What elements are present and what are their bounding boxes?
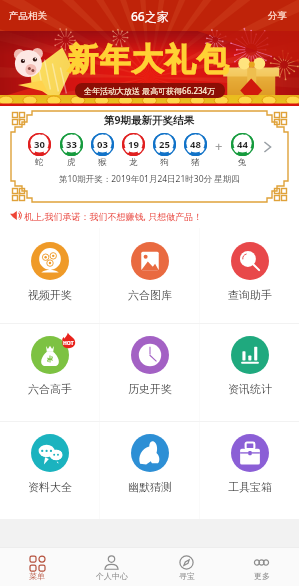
staticText: 蛇	[35, 157, 44, 168]
button[interactable]: 查询助手	[200, 228, 299, 323]
button[interactable]: 机上,我们承诺：我们不想赚钱, 只想做产品！	[0, 203, 299, 228]
button[interactable]: 产品相关	[0, 0, 56, 31]
staticText: 全年活动大放送 最高可获得66.234万	[84, 85, 216, 96]
button[interactable]: 分享	[256, 0, 299, 31]
staticText: 分享	[268, 10, 287, 22]
staticText: +	[215, 137, 223, 155]
staticText: 历史开奖	[128, 382, 172, 396]
staticText: 新年大礼包	[67, 40, 230, 79]
staticText: 产品相关	[9, 10, 47, 22]
staticText: 25	[159, 138, 170, 151]
staticText: 第10期开奖：2019年01月24日21时30分 星期四	[59, 173, 240, 185]
staticText: 幽默猜测	[128, 480, 172, 494]
button[interactable]: 寻宝	[149, 547, 224, 586]
button[interactable]: 新年大礼包	[0, 31, 299, 106]
button[interactable]: 资料大全	[0, 422, 99, 519]
button[interactable]: HOT	[0, 324, 99, 421]
staticText: 48	[190, 138, 201, 151]
staticText: 猪	[191, 157, 200, 168]
staticText: 兔	[238, 157, 247, 168]
staticText: 猴	[98, 157, 107, 168]
staticText: 资料大全	[28, 480, 72, 494]
staticText: 更多	[254, 571, 270, 581]
button[interactable]: 六合图库	[100, 228, 199, 323]
staticText: 第9期最新开奖结果	[104, 113, 195, 127]
button[interactable]: 视频开奖	[0, 228, 99, 323]
button[interactable]: 个人中心	[74, 547, 149, 586]
staticText: 03	[97, 138, 108, 151]
staticText: 机上,我们承诺：我们不想赚钱, 只想做产品！	[24, 210, 203, 222]
staticText: 工具宝箱	[228, 480, 272, 494]
staticText: 66之家	[131, 8, 169, 24]
button[interactable]: 幽默猜测	[100, 422, 199, 519]
staticText: 查询助手	[228, 288, 272, 302]
staticText: 资讯统计	[228, 382, 272, 396]
button[interactable]: 更多	[224, 547, 299, 586]
staticText: 六合高手	[28, 382, 72, 396]
button[interactable]: 资讯统计	[200, 324, 299, 421]
staticText: 龙	[129, 157, 138, 168]
staticText: 33	[66, 138, 77, 151]
button[interactable]: 第9期最新开奖结果	[0, 106, 299, 203]
staticText: 视频开奖	[28, 288, 72, 302]
button[interactable]: 工具宝箱	[200, 422, 299, 519]
staticText: HOT	[63, 340, 74, 347]
staticText: 44	[237, 138, 248, 151]
staticText: 个人中心	[96, 571, 128, 581]
staticText: 六合图库	[128, 288, 172, 302]
staticText: 狗	[160, 157, 169, 168]
button[interactable]: 菜单	[0, 547, 74, 586]
staticText: 19	[128, 138, 139, 151]
staticText: 虎	[67, 157, 76, 168]
staticText: 30	[34, 138, 45, 151]
button[interactable]: 历史开奖	[100, 324, 199, 421]
staticText: 寻宝	[179, 571, 195, 581]
staticText: 菜单	[29, 571, 45, 581]
